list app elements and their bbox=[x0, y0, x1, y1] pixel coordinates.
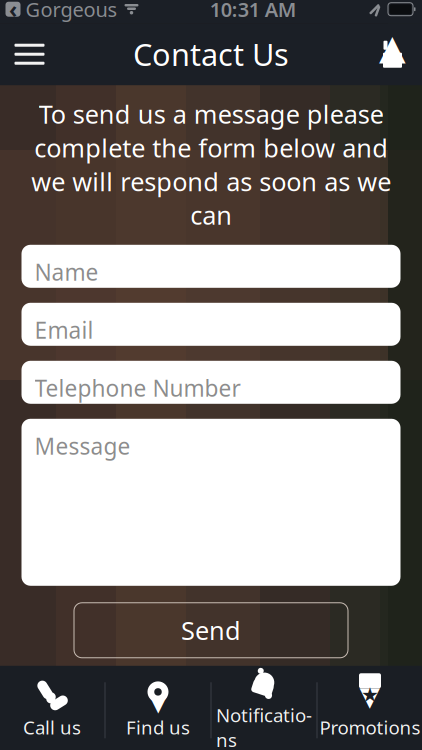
staticText: Message bbox=[34, 431, 130, 461]
staticText: Notifications bbox=[216, 702, 312, 750]
button[interactable]: Menu bbox=[0, 23, 59, 85]
staticText: Call us bbox=[23, 715, 81, 740]
button[interactable]: Home bbox=[362, 23, 422, 85]
staticText: 10:31 AM bbox=[210, 0, 297, 22]
staticText: ▼ bbox=[359, 681, 380, 712]
staticText: ★ bbox=[361, 683, 379, 706]
staticText: Email bbox=[34, 315, 93, 345]
button[interactable]: Send bbox=[74, 603, 348, 658]
staticText: Send bbox=[181, 613, 241, 647]
staticText: ▲ bbox=[379, 27, 406, 67]
staticText: Find us bbox=[126, 715, 190, 740]
button[interactable]: Name bbox=[21, 245, 400, 288]
button[interactable]: Call us bbox=[0, 666, 104, 750]
staticText: Promotions bbox=[319, 715, 420, 740]
staticText: Telephone Number bbox=[34, 373, 240, 403]
staticText: Contact Us bbox=[133, 34, 289, 75]
staticText: ▼ bbox=[149, 690, 166, 716]
staticText: Name bbox=[34, 257, 98, 287]
button[interactable]: ▼ bbox=[317, 666, 422, 750]
staticText: To send us a message please complete the… bbox=[31, 97, 391, 232]
staticText: Gorgeous bbox=[25, 0, 117, 22]
button[interactable]: Notifications bbox=[211, 666, 316, 750]
button[interactable]: ▼ bbox=[105, 666, 210, 750]
button[interactable]: Message bbox=[21, 419, 400, 586]
button[interactable]: Email bbox=[21, 303, 400, 346]
staticText: ‹ bbox=[9, 0, 17, 24]
button[interactable]: Telephone Number bbox=[21, 361, 400, 404]
